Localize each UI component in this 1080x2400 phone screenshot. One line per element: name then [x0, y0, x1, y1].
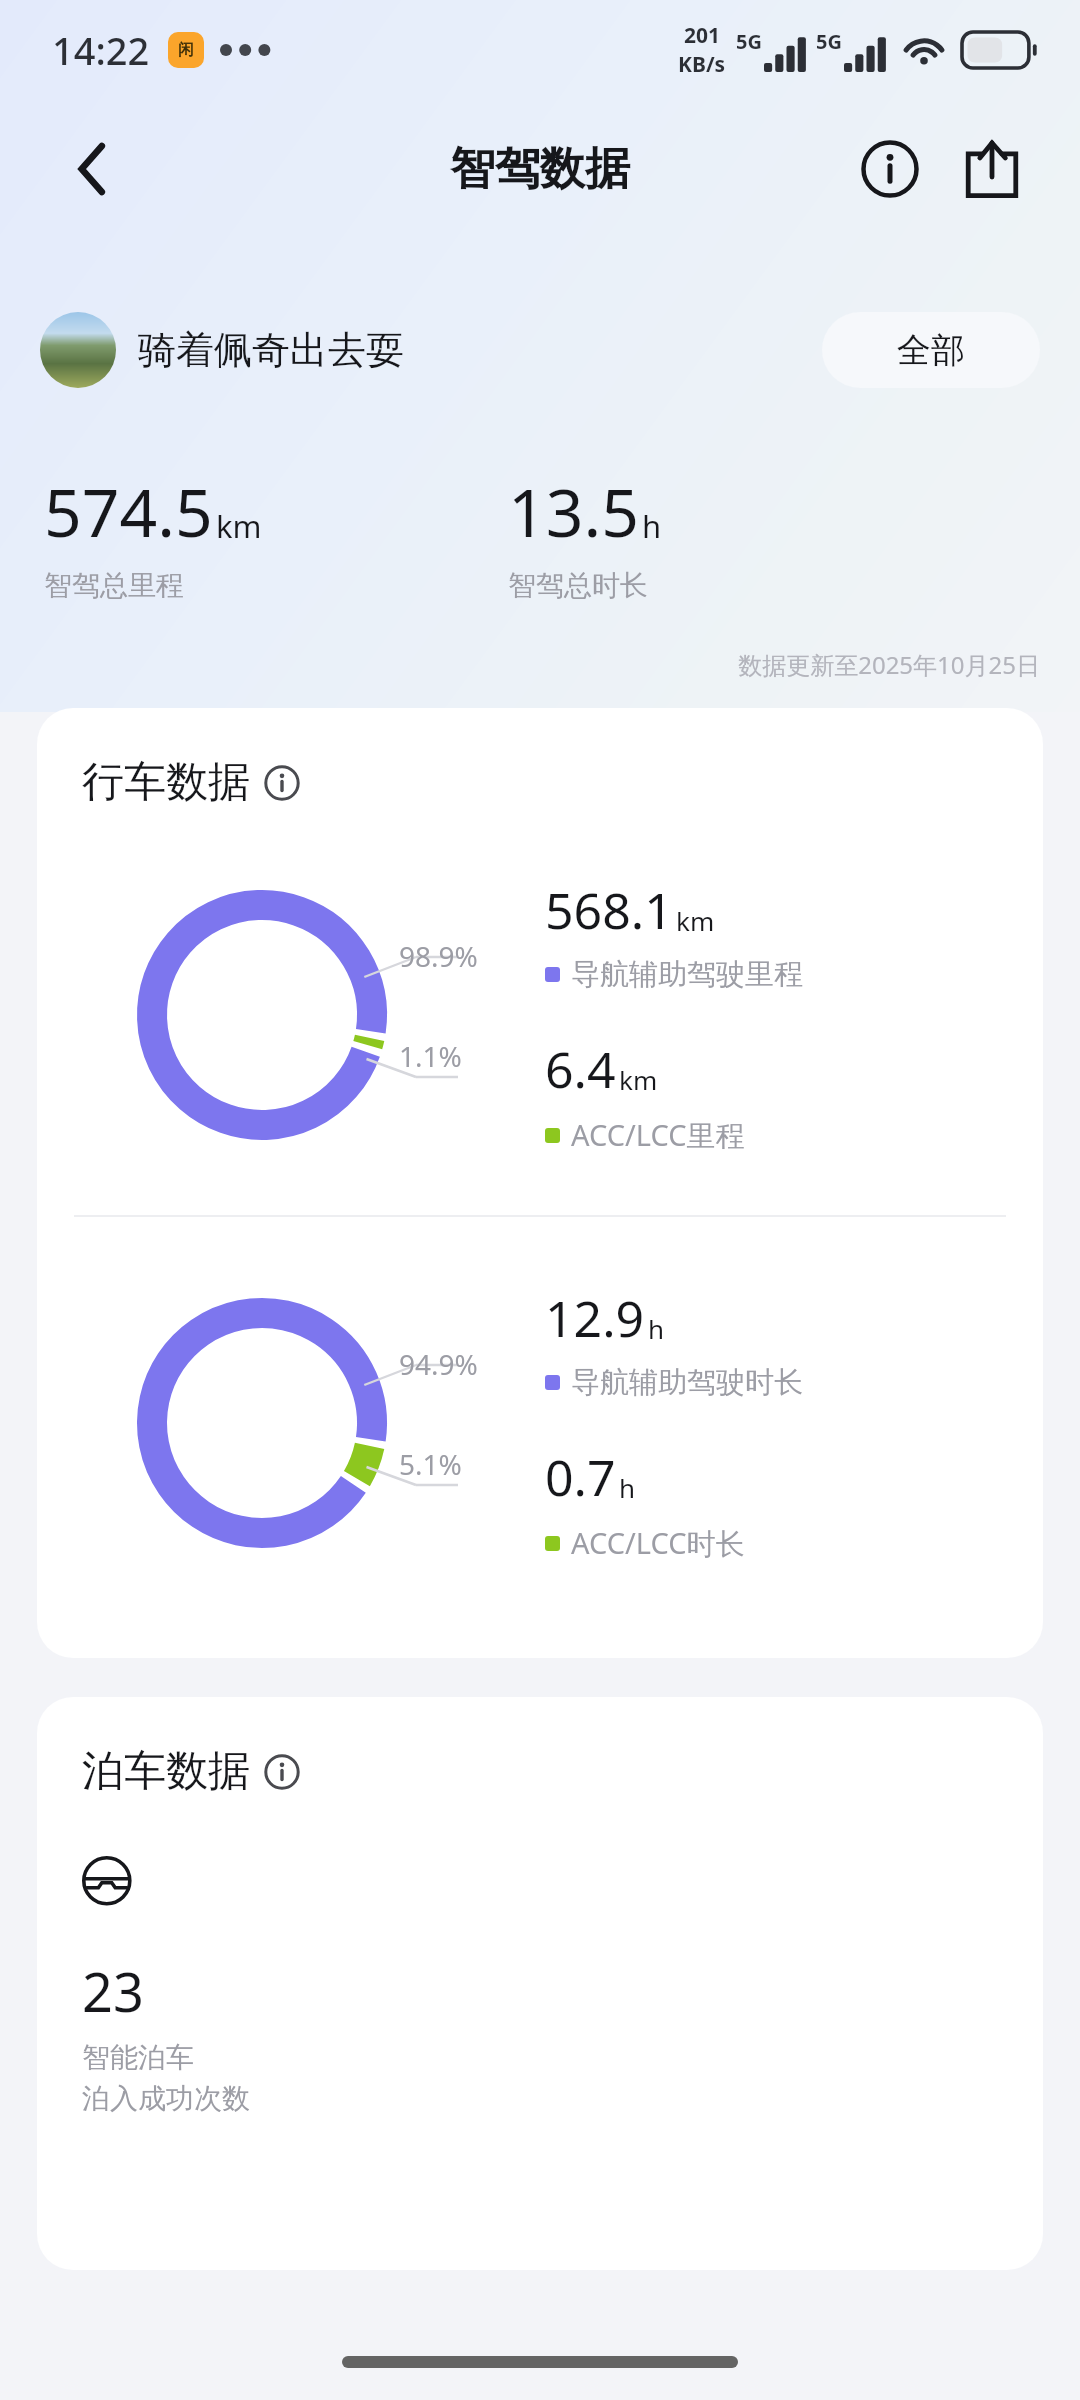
button[interactable]: 泊车数据 [82, 1745, 300, 1798]
staticText: 23 [82, 1954, 144, 2028]
staticText: 行车数据 [82, 756, 250, 809]
button[interactable]: Share [950, 127, 1034, 211]
button[interactable]: 行车数据 [82, 756, 300, 809]
staticText: h [642, 505, 662, 547]
staticText: h [648, 1311, 665, 1346]
staticText: 5G [736, 28, 762, 55]
button[interactable]: 行车数据 [37, 708, 1043, 1658]
staticText: 12.9 [545, 1284, 645, 1352]
staticText: 导航辅助驾驶里程 [571, 956, 803, 993]
staticText: 14:22 [52, 24, 150, 76]
staticText: 13.5 [508, 466, 639, 556]
staticText: 智驾数据 [450, 141, 630, 198]
staticText: 泊车数据 [82, 1745, 250, 1798]
staticText: h [619, 1470, 636, 1505]
staticText: 574.5 [44, 466, 213, 556]
staticText: 201 [684, 21, 721, 50]
staticText: 数据更新至2025年10月25日 [0, 648, 1040, 681]
staticText: 5.1% [399, 1445, 462, 1483]
other: Auto parking [82, 1856, 144, 1914]
staticText: 导航辅助驾驶时长 [571, 1364, 803, 1401]
staticText: 98.9% [399, 937, 478, 975]
staticText: 0.7 [545, 1443, 616, 1511]
staticText: ACC/LCC里程 [571, 1115, 745, 1155]
staticText: km [619, 1062, 658, 1097]
staticText: KB/s [678, 50, 726, 79]
button[interactable]: Avatar [40, 312, 116, 388]
staticText: 94.9% [399, 1345, 478, 1383]
button[interactable]: Info [848, 127, 932, 211]
button[interactable]: 泊车数据 [37, 1697, 1043, 2270]
staticText: km [676, 903, 715, 938]
button[interactable]: 全部 [822, 312, 1040, 388]
staticText: 568.1 [545, 876, 673, 944]
staticText: 全部 [897, 329, 965, 372]
staticText: 智驾总时长 [508, 568, 648, 603]
staticText: 智能泊车 [82, 2040, 194, 2075]
other: Info [264, 765, 300, 801]
staticText: 泊入成功次数 [82, 2081, 250, 2116]
other: Info [264, 1754, 300, 1790]
button[interactable]: 骑着佩奇出去耍 [138, 326, 404, 374]
staticText: 闲 [178, 40, 194, 60]
staticText: 智驾总里程 [44, 568, 184, 603]
staticText: ACC/LCC时长 [571, 1523, 745, 1563]
staticText: 6.4 [545, 1035, 616, 1103]
staticText: 1.1% [399, 1037, 462, 1075]
button[interactable]: Back [52, 129, 132, 209]
staticText: 5G [816, 28, 842, 55]
staticText: km [216, 505, 262, 547]
